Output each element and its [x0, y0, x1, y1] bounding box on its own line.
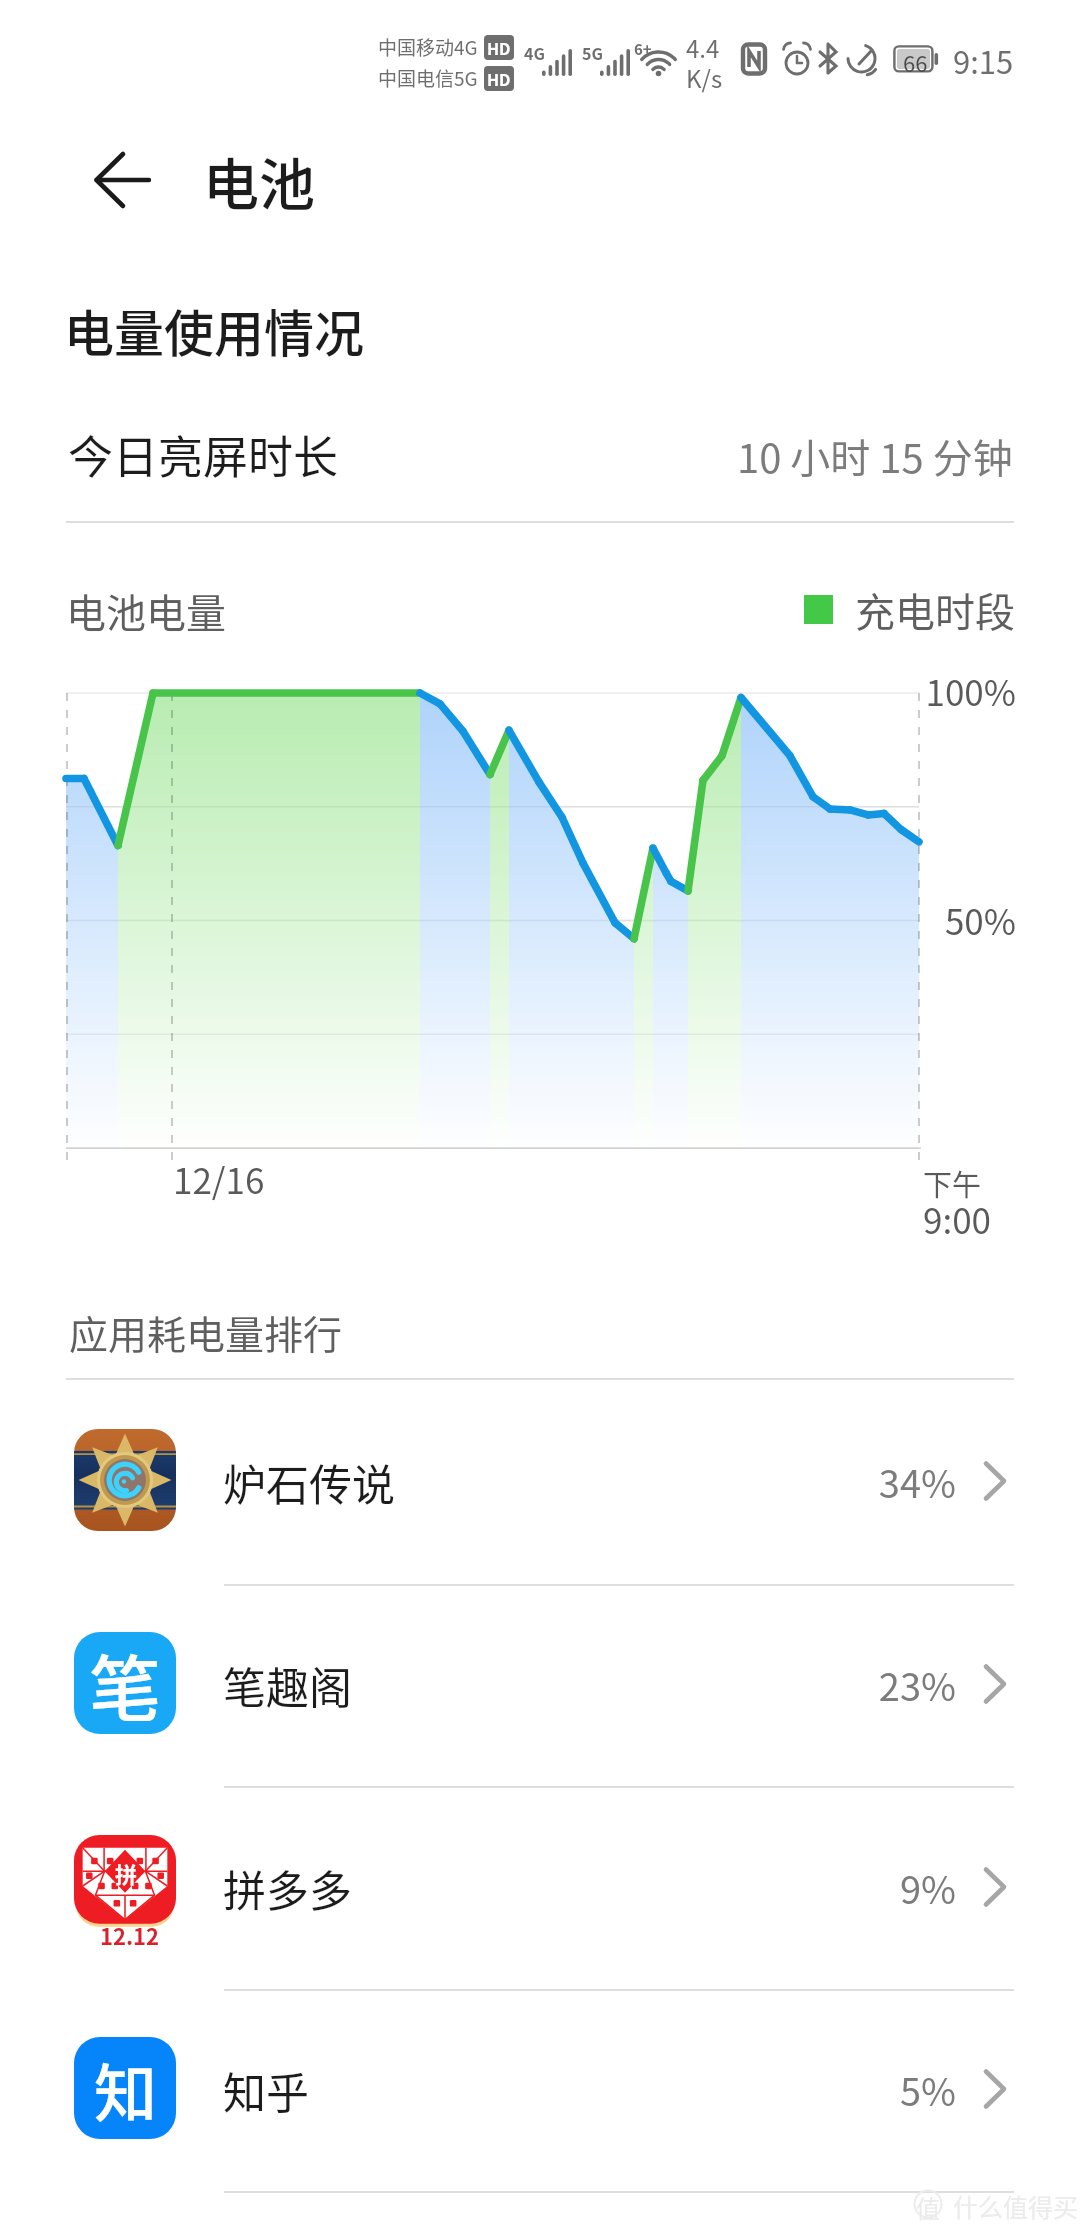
- staticText: 充电时段: [855, 581, 1015, 639]
- staticText: 6+: [634, 38, 652, 60]
- staticText: 笔趣阁: [223, 1654, 352, 1716]
- staticText: 5%: [656, 2062, 956, 2117]
- staticText: 4G: [524, 41, 545, 64]
- button[interactable]: Back: [72, 132, 172, 232]
- staticText: 炉石传说: [223, 1451, 395, 1513]
- button[interactable]: 笔: [0, 1581, 1080, 1784]
- staticText: 下午: [923, 1162, 982, 1204]
- staticText: 值: [916, 2190, 940, 2225]
- button[interactable]: 知: [0, 1986, 1080, 2189]
- staticText: 23%: [656, 1657, 956, 1712]
- staticText: 12/16: [173, 1153, 265, 1204]
- staticText: 电量使用情况: [64, 294, 364, 366]
- staticText: 知: [94, 2043, 157, 2134]
- staticText: 12.12: [100, 1919, 160, 1951]
- staticText: 4.4: [686, 30, 720, 65]
- staticText: K/s: [686, 60, 723, 95]
- staticText: 知乎: [223, 2059, 309, 2121]
- staticText: 电池电量: [66, 582, 226, 640]
- staticText: 9%: [656, 1860, 956, 1915]
- staticText: 今日亮屏时长: [68, 422, 339, 487]
- staticText: HD: [487, 36, 511, 59]
- staticText: 应用耗电量排行: [69, 1304, 343, 1360]
- staticText: 中国移动4G: [378, 33, 478, 61]
- staticText: 9:15: [953, 38, 1014, 83]
- staticText: 拼: [115, 1857, 138, 1889]
- staticText: HD: [487, 67, 511, 90]
- staticText: 50%: [616, 894, 1016, 945]
- staticText: 笔: [89, 1632, 162, 1733]
- staticText: 66: [903, 46, 928, 78]
- staticText: 拼多多: [223, 1857, 352, 1919]
- button[interactable]: 今日亮屏时长: [0, 400, 1080, 520]
- staticText: 34%: [656, 1454, 956, 1509]
- staticText: 电池: [203, 140, 315, 221]
- staticText: 100%: [616, 665, 1016, 716]
- staticText: 5G: [582, 41, 603, 64]
- staticText: 什么值得买: [953, 2188, 1079, 2224]
- button[interactable]: 炉石传说: [0, 1378, 1080, 1581]
- staticText: 10 小时 15 分钟: [737, 427, 1013, 485]
- button[interactable]: 拼: [0, 1784, 1080, 1987]
- staticText: 中国电信5G: [378, 64, 478, 92]
- staticText: 9:00: [923, 1193, 992, 1244]
